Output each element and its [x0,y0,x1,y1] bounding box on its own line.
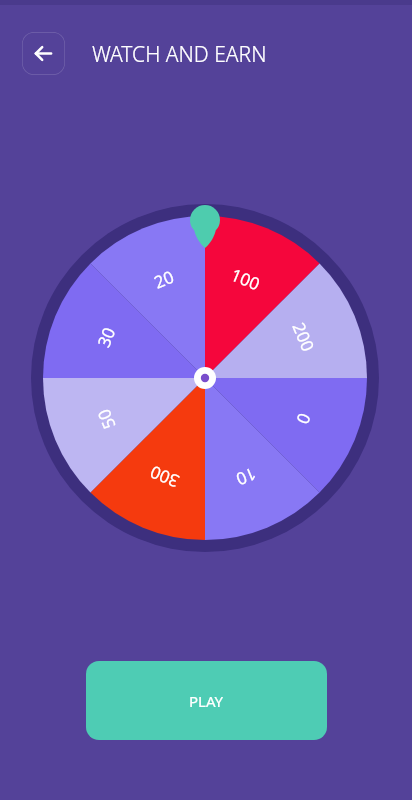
button[interactable] [86,661,327,740]
button[interactable]: Back [22,32,65,75]
